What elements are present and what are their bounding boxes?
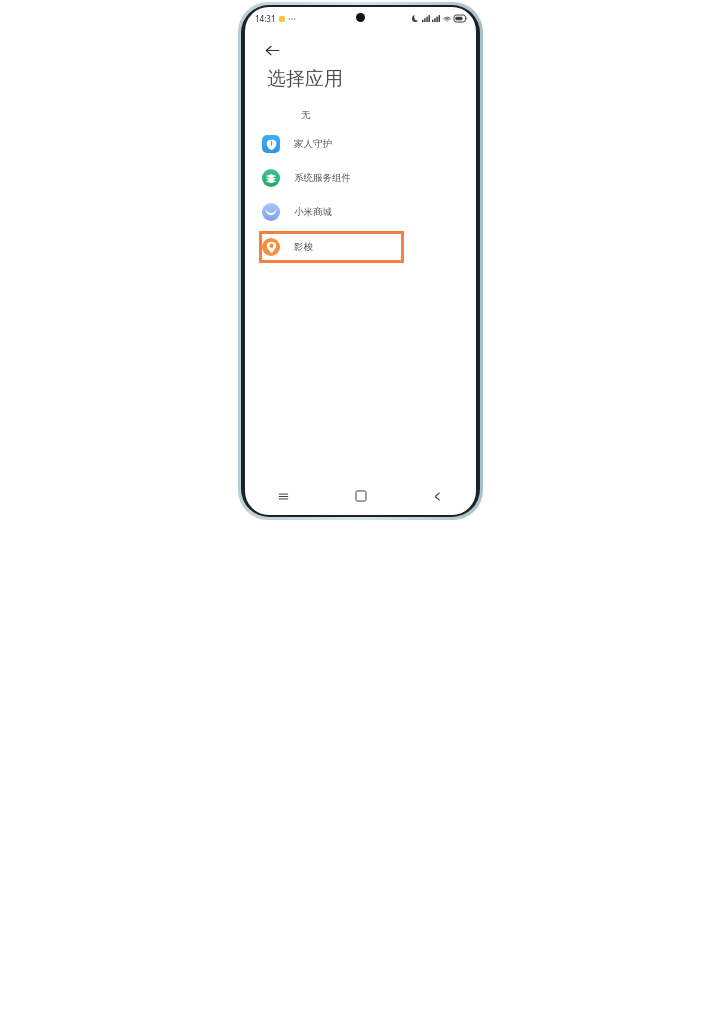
button[interactable]: Back <box>259 37 285 63</box>
button[interactable]: 系统服务组件 <box>245 161 476 195</box>
button[interactable]: Recents <box>245 483 322 509</box>
button[interactable]: Home <box>322 483 399 509</box>
button[interactable]: 无 <box>245 103 476 127</box>
button[interactable]: 小米商城 <box>245 195 476 229</box>
staticText: 14:31 <box>255 13 276 24</box>
button[interactable]: Back <box>399 483 476 509</box>
staticText: 小米商城 <box>294 206 332 218</box>
staticText: 系统服务组件 <box>294 172 351 184</box>
staticText: 家人守护 <box>294 138 332 150</box>
staticText: 影梭 <box>294 241 313 253</box>
staticText: 无 <box>301 109 311 121</box>
button[interactable]: 影梭 <box>259 231 404 263</box>
button[interactable]: 家人守护 <box>245 127 476 161</box>
staticText: 选择应用 <box>267 67 343 91</box>
